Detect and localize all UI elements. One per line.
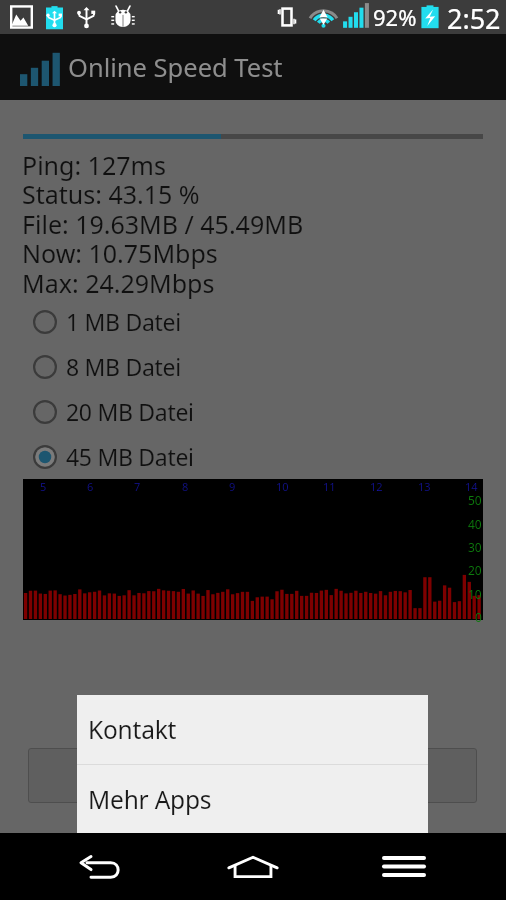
staticText: 45 MB Datei [66,441,194,472]
staticText: Mehr Apps [88,783,212,816]
staticText: 20 MB Datei [66,396,194,427]
staticText: 92% [373,2,417,32]
button[interactable]: Kontakt [77,695,428,764]
staticText: 9 [229,479,236,494]
button[interactable]: 8 MB Datei [0,344,506,389]
staticText: Ping: 127ms [22,148,166,182]
staticText: 8 [182,479,189,494]
staticText: Status: 43.15 % [22,177,200,211]
staticText: 14 [465,479,478,494]
staticText: 13 [418,479,431,494]
staticText: 2:52 [447,0,501,34]
button[interactable]: Recent apps [351,833,456,900]
button[interactable]: 45 MB Datei [0,434,506,479]
staticText: 20 [468,562,482,578]
button[interactable]: 1 MB Datei [0,299,506,344]
staticText: 6 [87,479,94,494]
staticText: 30 [468,539,482,555]
button[interactable]: 20 MB Datei [0,389,506,434]
staticText: Online Speed Test [68,50,283,85]
staticText: 1 MB Datei [66,306,181,337]
staticText: 0 [475,609,482,625]
staticText: Now: 10.75Mbps [22,236,218,270]
staticText: 12 [370,479,383,494]
button[interactable] [28,748,477,803]
staticText: 5 [40,479,47,494]
staticText: Kontakt [88,713,177,746]
staticText: File: 19.63MB / 45.49MB [22,207,304,241]
staticText: 40 [468,516,482,532]
staticText: Max: 24.29Mbps [22,266,215,300]
staticText: 8 MB Datei [66,351,181,382]
button[interactable]: Back [50,833,155,900]
button[interactable]: Mehr Apps [77,765,428,833]
button[interactable]: Home [200,833,306,900]
staticText: 50 [468,492,482,508]
staticText: 10 [276,479,289,494]
staticText: 7 [134,479,141,494]
staticText: 10 [468,586,482,602]
staticText: 11 [323,479,336,494]
